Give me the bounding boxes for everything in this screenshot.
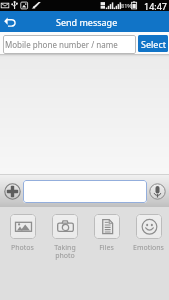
button[interactable]: Photos bbox=[2, 214, 43, 253]
staticText: 14:47 bbox=[144, 0, 168, 11]
staticText: Send message bbox=[56, 16, 118, 28]
button[interactable]: Files bbox=[86, 214, 127, 253]
button[interactable] bbox=[23, 180, 147, 203]
button[interactable]: Emotions bbox=[128, 214, 169, 253]
button[interactable]: Back bbox=[0, 11, 22, 32]
staticText: Photos bbox=[11, 243, 34, 253]
button[interactable]: Voice input bbox=[147, 181, 167, 201]
staticText: Select bbox=[141, 38, 166, 50]
button[interactable]: Select bbox=[138, 35, 168, 52]
staticText: 81% bbox=[121, 2, 132, 9]
button[interactable]: Taking photo bbox=[44, 214, 85, 260]
staticText: Emotions bbox=[133, 243, 164, 253]
staticText: Files bbox=[99, 243, 114, 253]
button[interactable]: Add attachment bbox=[2, 181, 22, 201]
button[interactable]: Mobile phone number / name bbox=[3, 35, 136, 54]
staticText: Mobile phone number / name bbox=[5, 39, 118, 50]
staticText: Taking photo bbox=[54, 243, 76, 260]
